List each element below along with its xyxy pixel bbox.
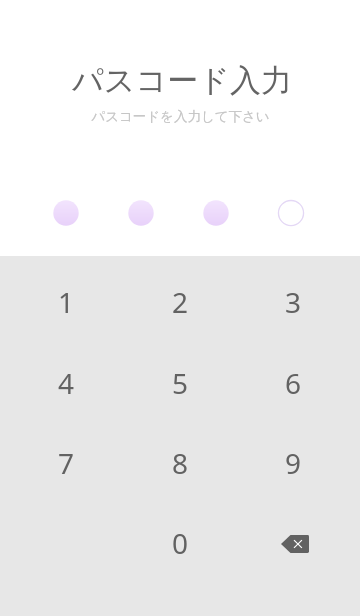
button[interactable]: 9 (237, 423, 350, 503)
staticText: 2 (172, 283, 189, 321)
button[interactable]: 4 (10, 343, 123, 423)
button[interactable]: 3 (237, 262, 350, 342)
staticText: 6 (285, 364, 302, 402)
staticText: パスコードを入力して下さい (91, 108, 270, 125)
staticText: 7 (58, 444, 75, 482)
button[interactable]: Backspace (237, 503, 350, 583)
staticText: 4 (58, 364, 75, 402)
button[interactable]: 5 (124, 343, 237, 423)
button[interactable]: 1 (10, 262, 123, 342)
button[interactable]: 7 (10, 423, 123, 503)
staticText: 5 (172, 364, 189, 402)
button[interactable]: 6 (237, 343, 350, 423)
staticText: 8 (172, 444, 189, 482)
button[interactable]: 2 (124, 262, 237, 342)
staticText: 3 (285, 283, 302, 321)
staticText: 1 (58, 283, 75, 321)
staticText: パスコード入力 (72, 61, 292, 100)
button[interactable]: 0 (124, 503, 237, 583)
staticText: 0 (172, 524, 189, 562)
staticText: 9 (285, 444, 302, 482)
button[interactable]: 8 (124, 423, 237, 503)
